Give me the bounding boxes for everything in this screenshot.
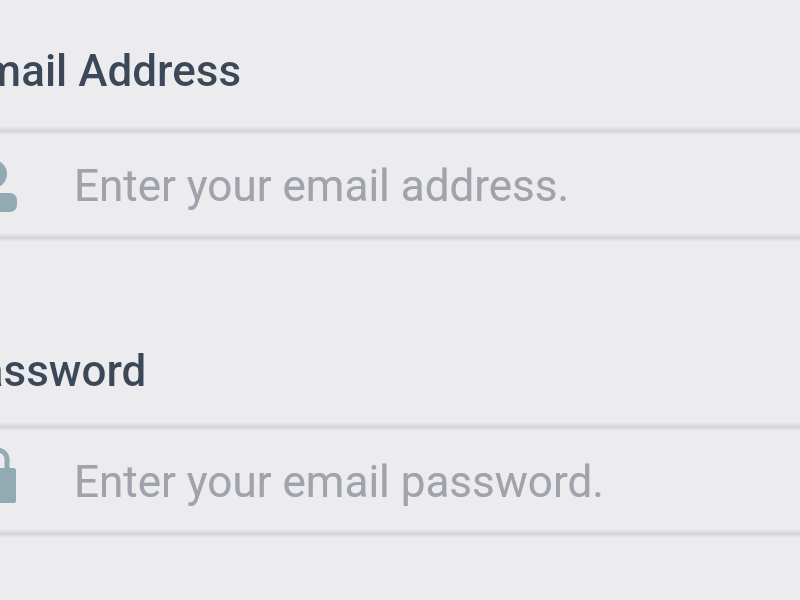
staticText: Password [0,345,147,397]
button[interactable]: Password [0,426,800,533]
button[interactable]: Account [0,130,800,237]
other: Password [0,426,40,533]
staticText: Enter your email address. [74,160,570,212]
other: Account [0,130,40,237]
staticText: Email Address [0,45,242,97]
staticText: Enter your email password. [74,456,604,508]
